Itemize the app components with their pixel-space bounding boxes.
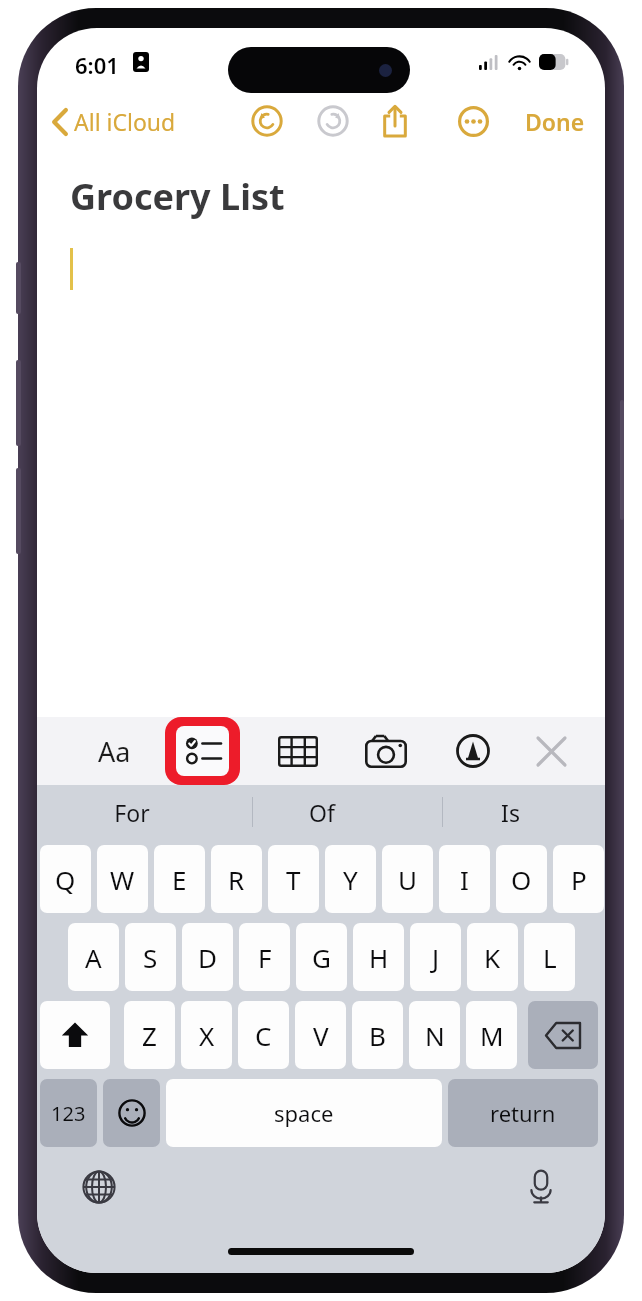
button[interactable]: M	[466, 1001, 517, 1069]
button[interactable]: G	[296, 923, 347, 991]
button[interactable]: Camera	[357, 725, 415, 777]
button[interactable]: More	[451, 99, 495, 143]
staticText: Y	[343, 862, 358, 897]
button[interactable]: All iCloud	[49, 102, 180, 141]
button[interactable]: return	[448, 1079, 598, 1147]
button[interactable]: Undo	[245, 99, 289, 143]
button[interactable]: Z	[124, 1001, 175, 1069]
staticText: Is	[501, 797, 520, 828]
button[interactable]: N	[409, 1001, 460, 1069]
button[interactable]: For	[37, 785, 227, 839]
staticText: V	[313, 1018, 329, 1053]
button[interactable]: A	[68, 923, 119, 991]
button[interactable]: E	[154, 845, 205, 913]
button[interactable]: H	[353, 923, 404, 991]
staticText: X	[199, 1018, 215, 1053]
button[interactable]: Aa	[85, 725, 143, 777]
staticText: H	[369, 940, 389, 975]
staticText: G	[312, 940, 331, 975]
staticText: S	[143, 940, 158, 975]
button[interactable]: B	[352, 1001, 403, 1069]
staticText: R	[228, 862, 245, 897]
button[interactable]: X	[181, 1001, 232, 1069]
staticText: W	[110, 862, 135, 897]
button[interactable]: Redo	[311, 99, 355, 143]
staticText: T	[286, 862, 301, 897]
staticText: 123	[51, 1100, 86, 1127]
staticText: P	[571, 862, 587, 897]
button[interactable]: Close keyboard	[523, 725, 579, 777]
button[interactable]: Q	[40, 845, 91, 913]
button[interactable]: Emoji	[103, 1079, 160, 1147]
staticText: return	[490, 1098, 556, 1128]
staticText: L	[543, 940, 557, 975]
button[interactable]: T	[268, 845, 319, 913]
staticText: I	[460, 862, 469, 897]
staticText: Aa	[98, 733, 131, 770]
staticText: J	[432, 940, 440, 975]
staticText: Done	[525, 106, 585, 137]
staticText: N	[425, 1018, 445, 1053]
staticText: Grocery List	[70, 172, 285, 221]
button[interactable]: Grocery List	[37, 150, 605, 717]
button[interactable]: Markup	[445, 725, 501, 777]
button[interactable]: Share	[371, 97, 419, 145]
staticText: C	[255, 1018, 272, 1053]
button[interactable]: R	[211, 845, 262, 913]
button[interactable]: Y	[325, 845, 376, 913]
staticText: For	[114, 797, 150, 828]
button[interactable]: W	[97, 845, 148, 913]
staticText: A	[85, 940, 102, 975]
staticText: D	[198, 940, 217, 975]
button[interactable]: space	[166, 1079, 442, 1147]
staticText: 6:01	[75, 50, 119, 80]
staticText: F	[258, 940, 272, 975]
button[interactable]: S	[125, 923, 176, 991]
staticText: O	[511, 862, 532, 897]
button[interactable]: Checklist	[165, 717, 240, 785]
button[interactable]: Shift	[40, 1001, 110, 1069]
button[interactable]: I	[439, 845, 490, 913]
button[interactable]: Dictate	[515, 1161, 567, 1213]
button[interactable]: O	[496, 845, 547, 913]
button[interactable]: 123	[40, 1079, 97, 1147]
button[interactable]: Backspace	[528, 1001, 598, 1069]
staticText: U	[398, 862, 418, 897]
button[interactable]: J	[410, 923, 461, 991]
button[interactable]: K	[467, 923, 518, 991]
button[interactable]: Is	[416, 785, 605, 839]
button[interactable]: D	[182, 923, 233, 991]
button[interactable]: P	[553, 845, 604, 913]
button[interactable]: U	[382, 845, 433, 913]
button[interactable]: Table	[269, 725, 327, 777]
staticText: B	[369, 1018, 386, 1053]
staticText: E	[172, 862, 187, 897]
staticText: Of	[309, 797, 335, 828]
staticText: All iCloud	[74, 106, 176, 137]
button[interactable]: C	[238, 1001, 289, 1069]
staticText: Q	[55, 862, 76, 897]
staticText: K	[484, 940, 501, 975]
button[interactable]: V	[295, 1001, 346, 1069]
button[interactable]: L	[524, 923, 575, 991]
button[interactable]: Done	[519, 102, 591, 141]
button[interactable]: Switch keyboard	[73, 1161, 125, 1213]
button[interactable]: Of	[227, 785, 416, 839]
staticText: Z	[142, 1018, 157, 1053]
staticText: space	[274, 1098, 334, 1128]
staticText: M	[480, 1018, 504, 1053]
button[interactable]: F	[239, 923, 290, 991]
